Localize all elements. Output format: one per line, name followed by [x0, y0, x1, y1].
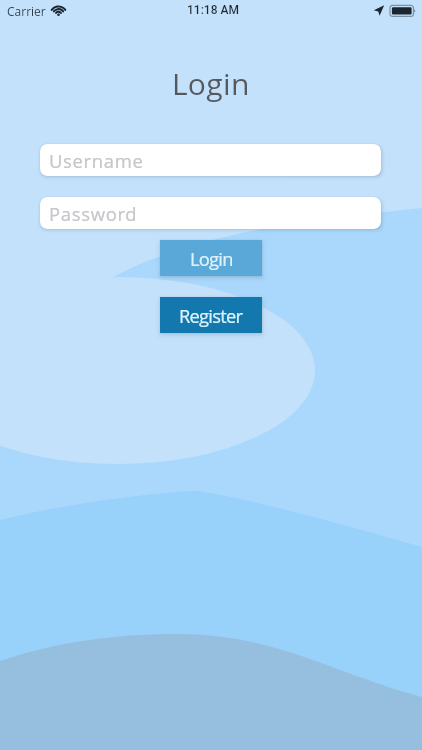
staticText: Username	[49, 148, 144, 173]
staticText: Register	[179, 303, 243, 328]
staticText: Login	[190, 246, 233, 271]
staticText: Password	[49, 201, 138, 226]
staticText: Login	[172, 63, 250, 104]
staticText: Carrier	[7, 3, 46, 19]
button[interactable]: Login	[160, 240, 262, 276]
button[interactable]: Register	[160, 297, 262, 333]
button[interactable]: Password	[40, 197, 381, 229]
button[interactable]: Username	[40, 144, 381, 176]
staticText: 11:18 AM	[187, 3, 239, 17]
